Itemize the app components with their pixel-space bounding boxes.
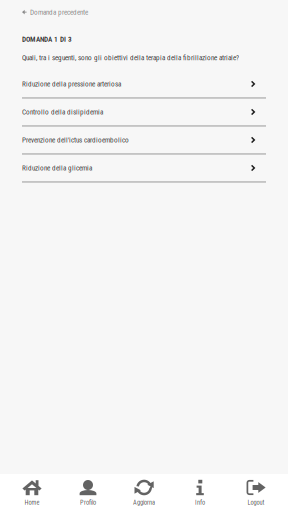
- button[interactable]: Riduzione della glicemia: [22, 154, 266, 182]
- button[interactable]: Prevenzione dell'ictus cardioembolico: [22, 126, 266, 154]
- staticText: DOMANDA 1 DI 3: [22, 35, 72, 43]
- button[interactable]: Info: [172, 473, 228, 512]
- staticText: Logout: [247, 499, 264, 506]
- staticText: Info: [195, 499, 205, 506]
- staticText: Aggiorna: [133, 499, 155, 506]
- staticText: Home: [24, 499, 39, 506]
- button[interactable]: Domanda precedente: [0, 4, 98, 20]
- staticText: Riduzione della glicemia: [22, 164, 92, 172]
- staticText: Controllo della dislipidemia: [22, 108, 103, 116]
- staticText: Riduzione della pressione arteriosa: [22, 80, 121, 88]
- button[interactable]: Profilo: [60, 473, 116, 512]
- button[interactable]: Riduzione della pressione arteriosa: [22, 70, 266, 98]
- button[interactable]: Aggiorna: [116, 473, 172, 512]
- button[interactable]: Controllo della dislipidemia: [22, 98, 266, 126]
- staticText: Prevenzione dell'ictus cardioembolico: [22, 136, 129, 144]
- button[interactable]: Home: [4, 473, 60, 512]
- staticText: Domanda precedente: [30, 8, 88, 16]
- staticText: Quali, tra i seguenti, sono gli obiettiv…: [22, 53, 239, 62]
- staticText: Profilo: [80, 499, 96, 506]
- button[interactable]: Logout: [228, 473, 284, 512]
